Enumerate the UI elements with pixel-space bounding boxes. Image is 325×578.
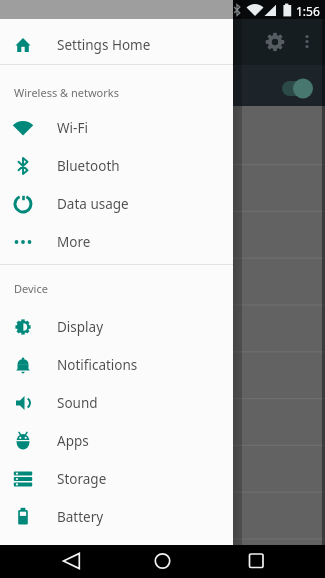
button[interactable]: More — [0, 223, 233, 261]
staticText: Wireless & networks — [14, 85, 119, 100]
button[interactable]: Battery — [0, 498, 233, 536]
staticText: Battery — [57, 508, 104, 526]
button[interactable]: Settings Home — [0, 26, 233, 64]
staticText: Storage — [57, 470, 107, 488]
staticText: Device — [14, 281, 48, 296]
button[interactable]: Display — [0, 308, 233, 346]
button[interactable]: Storage — [0, 460, 233, 498]
button[interactable]: Wi-Fi — [0, 109, 233, 147]
button[interactable]: Apps — [0, 422, 233, 460]
staticText: Bluetooth — [57, 157, 120, 175]
staticText: Wi-Fi — [57, 119, 88, 137]
staticText: Sound — [57, 394, 98, 412]
staticText: More — [57, 233, 91, 251]
staticText: 1:56 — [296, 3, 320, 19]
button[interactable]: Bluetooth — [0, 147, 233, 185]
button[interactable]: Sound — [0, 384, 233, 422]
staticText: Apps — [57, 432, 89, 450]
button[interactable]: Data usage — [0, 185, 233, 223]
staticText: Data usage — [57, 195, 129, 213]
button[interactable]: Notifications — [0, 346, 233, 384]
staticText: Display — [57, 318, 104, 336]
staticText: Settings Home — [57, 36, 151, 54]
staticText: Notifications — [57, 356, 138, 374]
